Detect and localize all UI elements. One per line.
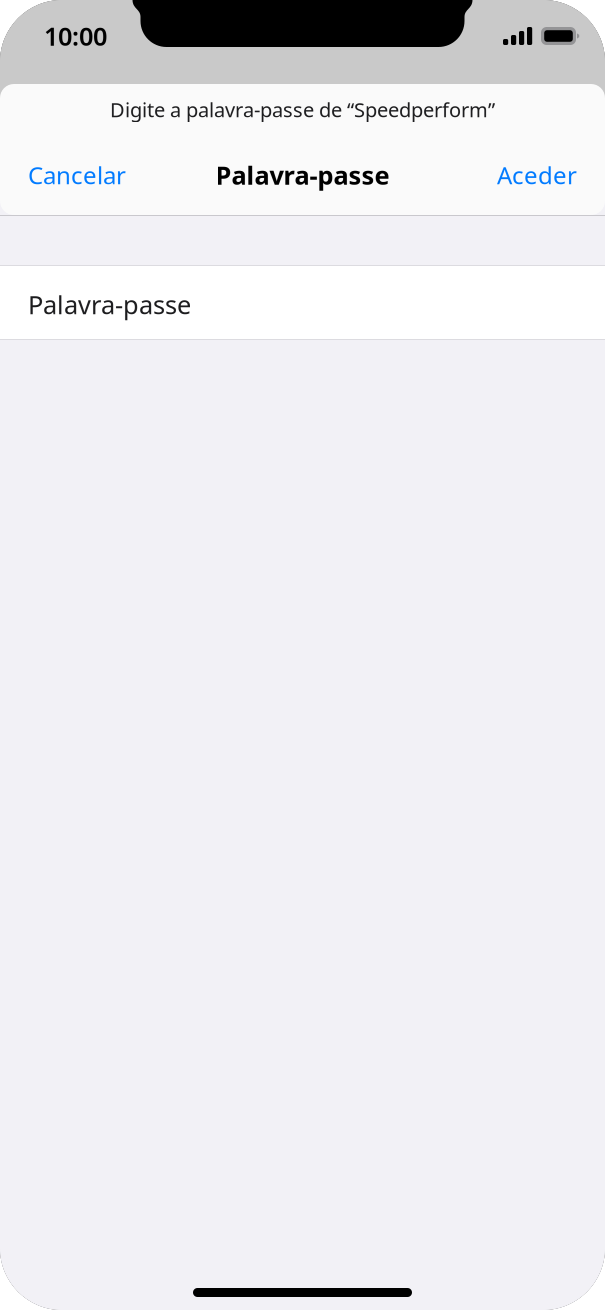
staticText: Palavra-passe	[215, 158, 389, 192]
staticText: Digite a palavra-passe de “Speedperform”	[110, 96, 495, 123]
button[interactable]: Cancelar	[20, 145, 134, 205]
staticText: Palavra-passe	[28, 288, 191, 321]
staticText: Cancelar	[28, 159, 126, 191]
staticText: Aceder	[497, 159, 577, 191]
staticText: 10:00	[44, 19, 107, 53]
button[interactable]: Palavra-passe	[0, 266, 605, 339]
button[interactable]: Aceder	[489, 145, 585, 205]
